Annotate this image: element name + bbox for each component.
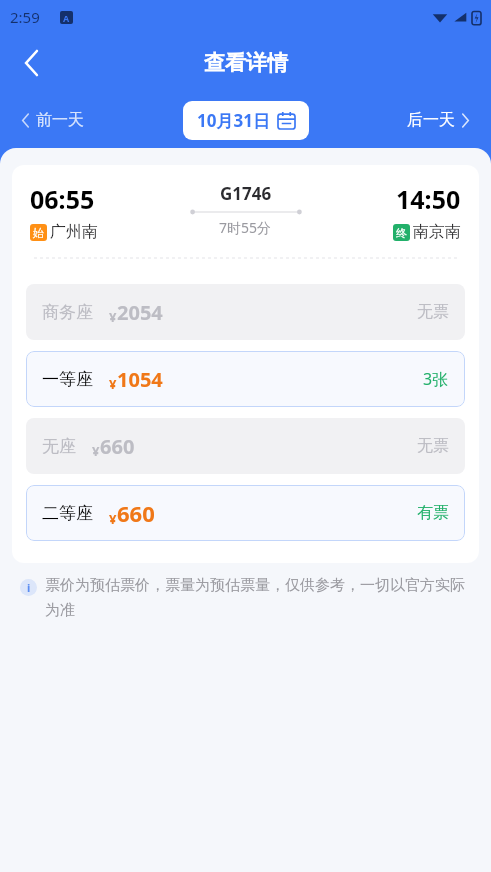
button[interactable]: 后一天	[403, 104, 473, 136]
staticText: 14:50	[396, 182, 461, 216]
staticText: 有票	[417, 503, 449, 523]
staticText: 3张	[423, 368, 449, 390]
staticText: 始	[33, 226, 44, 240]
staticText: 无票	[417, 302, 449, 322]
staticText: ¥	[109, 510, 117, 528]
button[interactable]: 二等座	[26, 485, 465, 541]
staticText: 660	[117, 498, 155, 528]
button[interactable]: 10月31日	[183, 101, 309, 140]
staticText: ¥	[109, 308, 117, 326]
staticText: ¥	[92, 442, 100, 460]
staticText: 南京南	[413, 222, 461, 242]
staticText: 2:59	[10, 7, 40, 27]
staticText: 终	[396, 226, 407, 240]
staticText: 10月31日	[197, 109, 270, 132]
staticText: 无票	[417, 436, 449, 456]
button[interactable]: Back	[12, 43, 52, 83]
staticText: 广州南	[50, 222, 98, 242]
staticText: 一等座	[42, 369, 93, 390]
button[interactable]: 前一天	[18, 104, 88, 136]
staticText: 2054	[117, 299, 163, 326]
staticText: 前一天	[36, 110, 84, 130]
staticText: i	[27, 580, 31, 595]
button[interactable]: 商务座	[26, 284, 465, 340]
staticText: ¥	[109, 375, 117, 393]
staticText: G1746	[220, 182, 272, 205]
staticText: 票价为预估票价，票量为预估票量，仅供参考，一切以官方实际为准	[45, 576, 467, 619]
staticText: 7时55分	[219, 218, 272, 237]
staticText: 无座	[42, 436, 76, 457]
staticText: 商务座	[42, 302, 93, 323]
staticText: 二等座	[42, 503, 93, 524]
button[interactable]: 一等座	[26, 351, 465, 407]
staticText: 后一天	[407, 110, 455, 130]
button[interactable]: 无座	[26, 418, 465, 474]
staticText: 1054	[117, 366, 163, 393]
staticText: 查看详情	[204, 50, 288, 76]
staticText: 06:55	[30, 182, 95, 216]
staticText: 660	[100, 433, 135, 460]
staticText: A	[63, 12, 70, 24]
